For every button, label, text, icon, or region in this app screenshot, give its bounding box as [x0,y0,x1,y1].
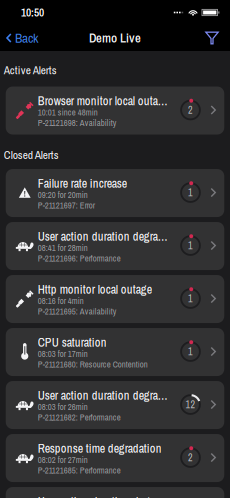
button[interactable]: User action duration degra… [6,381,224,429]
button[interactable]: User action duration degra… [6,222,224,270]
staticText: P-21121695: Availability [38,307,117,316]
staticText: 08:03 for 17min [38,349,88,359]
staticText: User action duration degra… [38,230,168,243]
staticText: CPU saturation [38,336,107,349]
staticText: P-21121680: Resource Contention [38,360,148,369]
staticText: Closed Alerts [4,148,59,161]
button[interactable]: Browser monitor local outa… [6,86,224,134]
staticText: P-21121696: Performance [38,254,121,263]
staticText: P-21121682: Performance [38,413,121,422]
staticText: Http monitor local outage [38,283,152,296]
staticText: User action duration degra… [38,495,168,498]
staticText: 1 [188,187,193,198]
button[interactable]: Failure rate increase [6,169,224,217]
staticText: P-21121698: Availability [38,118,117,128]
staticText: 2 [188,104,193,115]
staticText: Back [15,31,38,45]
button[interactable]: Filter [205,25,230,51]
staticText: P-21121697: Error [38,201,95,210]
staticText: 09:20 for 20min [38,190,88,200]
staticText: 1 [188,346,193,357]
staticText: 10:01 since 48min [38,108,98,117]
button[interactable]: Response time degradation [6,434,224,482]
staticText: 10:50 [21,5,44,20]
button[interactable]: Http monitor local outage [6,275,224,323]
staticText: Browser monitor local outa… [38,94,168,108]
staticText: 12 [185,399,195,410]
staticText: 2 [188,452,193,463]
staticText: User action duration degra… [38,389,168,402]
staticText: Demo Live [89,29,141,47]
button[interactable]: Back [0,25,38,51]
staticText: Response time degradation [38,442,162,455]
staticText: 1 [188,240,193,251]
staticText: 08:16 for 4min [38,296,84,306]
button[interactable]: CPU saturation [6,328,224,376]
staticText: 08:02 for 27min [38,455,88,465]
staticText: P-21121685: Performance [38,466,121,475]
staticText: 08:03 for 26min [38,402,88,412]
staticText: 08:41 for 28min [38,243,88,253]
staticText: Failure rate increase [38,177,127,190]
staticText: Active Alerts [4,64,57,76]
staticText: 1 [188,293,193,304]
button[interactable]: User action duration degra… [6,487,224,498]
